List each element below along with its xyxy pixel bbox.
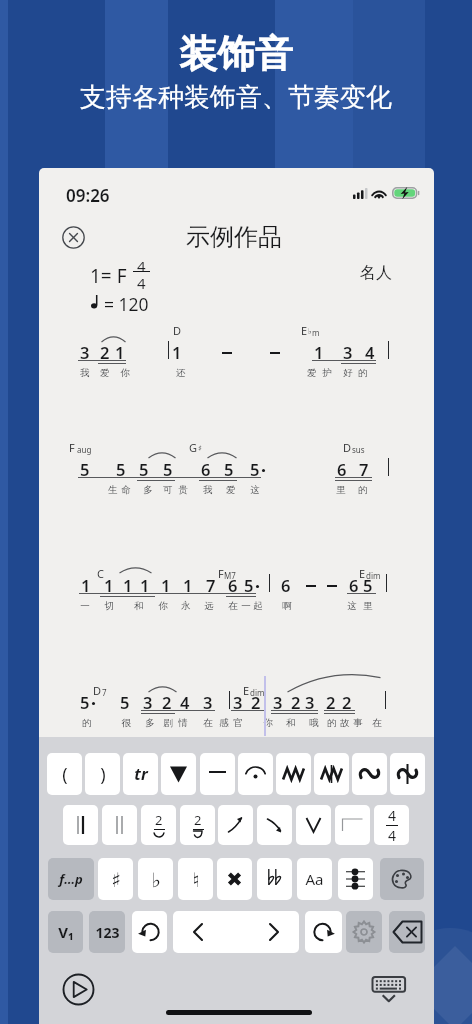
staticText: 可 <box>163 484 173 496</box>
button[interactable]: Double sharp <box>217 858 252 900</box>
button[interactable]: Mordent <box>276 753 311 795</box>
button[interactable]: Natural <box>178 858 213 900</box>
staticText: 好 <box>343 367 353 379</box>
button[interactable]: Backspace <box>389 911 425 953</box>
staticText: 5 <box>163 458 173 480</box>
button[interactable]: Inverted turn <box>390 753 425 795</box>
staticText: ♭ <box>308 327 312 336</box>
button[interactable]: Open bracket <box>47 753 82 795</box>
staticText: 的 <box>82 717 92 729</box>
staticText: 1 <box>115 341 125 363</box>
button[interactable]: Fermata <box>238 753 273 795</box>
staticText: D <box>173 323 182 338</box>
staticText: 4 <box>365 341 375 363</box>
staticText: ( <box>62 762 68 787</box>
button[interactable]: Time signature <box>374 805 409 845</box>
staticText: 5 <box>80 458 90 480</box>
button[interactable]: Slide up <box>218 805 253 845</box>
button[interactable]: Redo <box>305 911 342 953</box>
button[interactable]: Note settings <box>338 858 373 900</box>
staticText: 3 <box>273 691 283 713</box>
button[interactable]: Marcato <box>161 753 196 795</box>
staticText: E <box>243 683 250 698</box>
staticText: 3 <box>305 691 315 713</box>
staticText: V₁ <box>58 922 74 942</box>
button[interactable]: Close bracket <box>85 753 120 795</box>
staticText: 3 <box>343 341 353 363</box>
staticText: 爱 <box>226 484 236 496</box>
button[interactable]: Bar line <box>102 805 137 845</box>
button[interactable]: Play <box>59 970 97 1008</box>
staticText: 故 <box>340 717 350 729</box>
staticText: 多 <box>145 717 155 729</box>
staticText: 6 <box>349 574 359 596</box>
staticText: 1 <box>172 341 182 363</box>
button[interactable]: Close <box>55 219 91 255</box>
staticText: 贵 <box>178 484 188 496</box>
staticText: 3 <box>143 691 153 713</box>
button[interactable]: Numbers <box>89 911 125 953</box>
button[interactable]: Double flat <box>257 858 292 900</box>
staticText: ♭ <box>151 868 161 891</box>
button[interactable]: Mordent with slash <box>314 753 349 795</box>
staticText: 啊 <box>282 600 292 612</box>
staticText: 的 <box>358 484 368 496</box>
staticText: 很 <box>121 717 131 729</box>
staticText: aug <box>75 444 92 455</box>
button[interactable]: Duplet <box>141 805 176 845</box>
button[interactable]: Slide down <box>257 805 292 845</box>
button[interactable]: Text <box>297 858 332 900</box>
button[interactable]: Flat <box>138 858 173 900</box>
staticText: ♮ <box>192 868 200 891</box>
staticText: ♯ <box>198 444 202 453</box>
staticText: 3 <box>203 691 213 713</box>
staticText: 生 <box>108 484 118 496</box>
button[interactable]: Dynamics <box>48 858 94 900</box>
button[interactable]: Settings <box>346 911 382 953</box>
staticText: 3 <box>80 341 90 363</box>
staticText: 多 <box>143 484 153 496</box>
staticText: ) <box>100 762 106 787</box>
button[interactable]: Breath mark <box>296 805 331 845</box>
staticText: 感 <box>219 717 229 729</box>
button[interactable]: Double bar line <box>63 805 98 845</box>
button[interactable]: Move cursor <box>173 911 299 953</box>
staticText: 5 <box>139 458 149 480</box>
button[interactable]: Sharp <box>98 858 133 900</box>
staticText: 哦 <box>309 717 319 729</box>
staticText: 5 <box>363 574 373 596</box>
staticText: 4 <box>180 691 190 713</box>
button[interactable]: Trill <box>123 753 158 795</box>
staticText: 这 <box>250 484 260 496</box>
staticText: 你 <box>120 367 130 379</box>
staticText: Aa <box>305 869 324 889</box>
staticText: 123 <box>95 923 120 942</box>
staticText: F <box>69 440 75 455</box>
button[interactable]: Turn <box>352 753 387 795</box>
staticText: 一 <box>241 600 251 612</box>
button[interactable]: Hide keyboard <box>369 974 409 1004</box>
staticText: 1 <box>183 574 193 596</box>
staticText: 爱 <box>307 367 317 379</box>
staticText: 爱 <box>100 367 110 379</box>
staticText: 2 <box>342 691 352 713</box>
button[interactable]: First ending <box>335 805 370 845</box>
staticText: dim <box>250 687 265 698</box>
button[interactable]: Tuplet <box>180 805 215 845</box>
staticText: dim <box>366 570 381 581</box>
staticText: = 120 <box>104 292 149 316</box>
staticText: 1 <box>123 574 133 596</box>
staticText: 7 <box>359 458 369 480</box>
button[interactable]: Tenuto <box>200 753 235 795</box>
button[interactable]: Undo <box>132 911 167 953</box>
staticText: 我 <box>203 484 213 496</box>
staticText: 我 <box>80 367 90 379</box>
button[interactable]: Voice 1 <box>48 911 83 953</box>
staticText: 事 <box>353 717 363 729</box>
staticText: 2 <box>326 691 336 713</box>
button[interactable]: Colour palette <box>380 858 424 900</box>
staticText: 2 <box>155 811 163 829</box>
staticText: 1 <box>161 574 171 596</box>
staticText: 这 <box>347 600 357 612</box>
staticText: 切 <box>104 600 114 612</box>
